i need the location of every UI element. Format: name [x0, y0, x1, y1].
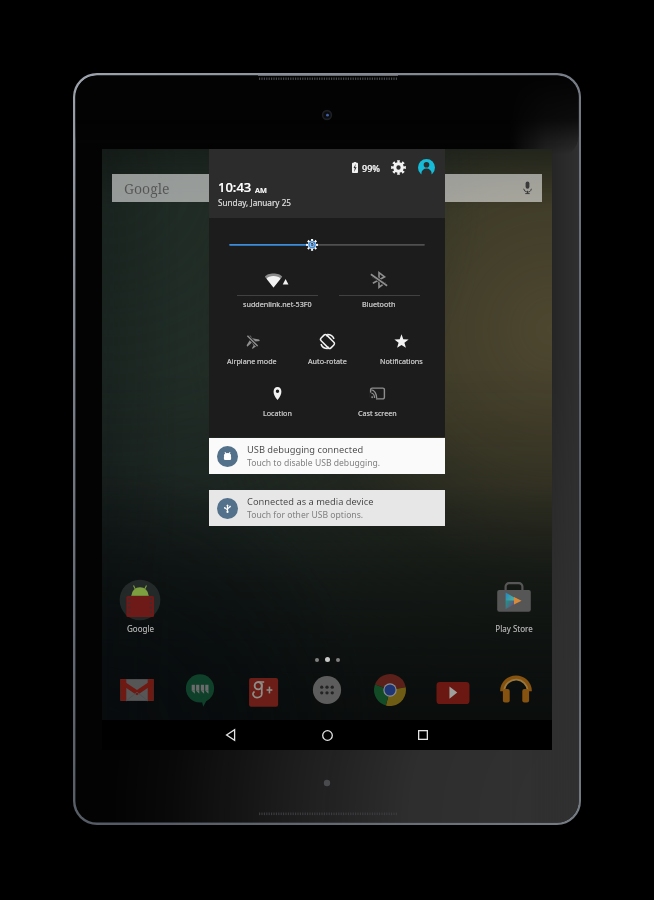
staticText: Auto-rotate — [308, 356, 347, 366]
staticText: Bluetooth — [362, 299, 396, 309]
staticText: Touch for other USB options. — [247, 509, 364, 521]
staticText: 99% — [362, 162, 380, 174]
button[interactable]: Auto-rotate — [281, 334, 373, 366]
staticText: Google — [127, 623, 154, 634]
button[interactable]: Airplane mode — [206, 334, 298, 366]
staticText: Touch to disable USB debugging. — [247, 457, 381, 469]
other: Voice search — [523, 181, 532, 195]
button[interactable]: Google — [114, 579, 166, 634]
button[interactable]: Recent apps — [400, 720, 446, 750]
button[interactable]: User profile — [418, 159, 435, 176]
staticText: Airplane mode — [227, 356, 277, 366]
button[interactable]: USB debugging connected — [209, 438, 445, 474]
button[interactable]: Hangouts — [183, 673, 217, 707]
staticText: Location — [263, 408, 292, 418]
staticText: Google — [124, 179, 170, 198]
button[interactable]: Chrome — [373, 673, 407, 707]
staticText: Sunday, January 25 — [218, 197, 292, 208]
button[interactable]: Connected as a media device — [209, 490, 445, 526]
button[interactable]: Play Store — [488, 579, 540, 634]
staticText: AM — [255, 185, 267, 195]
button[interactable]: Cast screen — [331, 386, 423, 418]
button[interactable]: Bluetooth — [333, 272, 425, 309]
button[interactable]: Notifications — [355, 334, 447, 366]
staticText: Connected as a media device — [247, 495, 374, 508]
staticText: Cast screen — [358, 408, 397, 418]
button[interactable]: Gmail — [120, 673, 154, 707]
button[interactable]: Settings — [391, 160, 406, 175]
staticText: USB debugging connected — [247, 443, 364, 456]
button[interactable]: Google Plus — [247, 673, 281, 707]
staticText: Notifications — [380, 356, 423, 366]
button[interactable]: All apps — [310, 673, 344, 707]
button[interactable]: Home — [304, 720, 350, 750]
button[interactable]: Google — [112, 174, 542, 202]
button[interactable]: Back — [208, 720, 254, 750]
staticText: 10:43 — [218, 178, 252, 196]
staticText: suddenlink.net-53F0 — [243, 299, 312, 309]
button[interactable]: Play Music — [499, 673, 533, 707]
button[interactable]: YouTube — [436, 673, 470, 707]
staticText: Play Store — [495, 623, 533, 634]
button[interactable]: Location — [231, 386, 323, 418]
button[interactable]: suddenlink.net-53F0 — [231, 272, 323, 309]
